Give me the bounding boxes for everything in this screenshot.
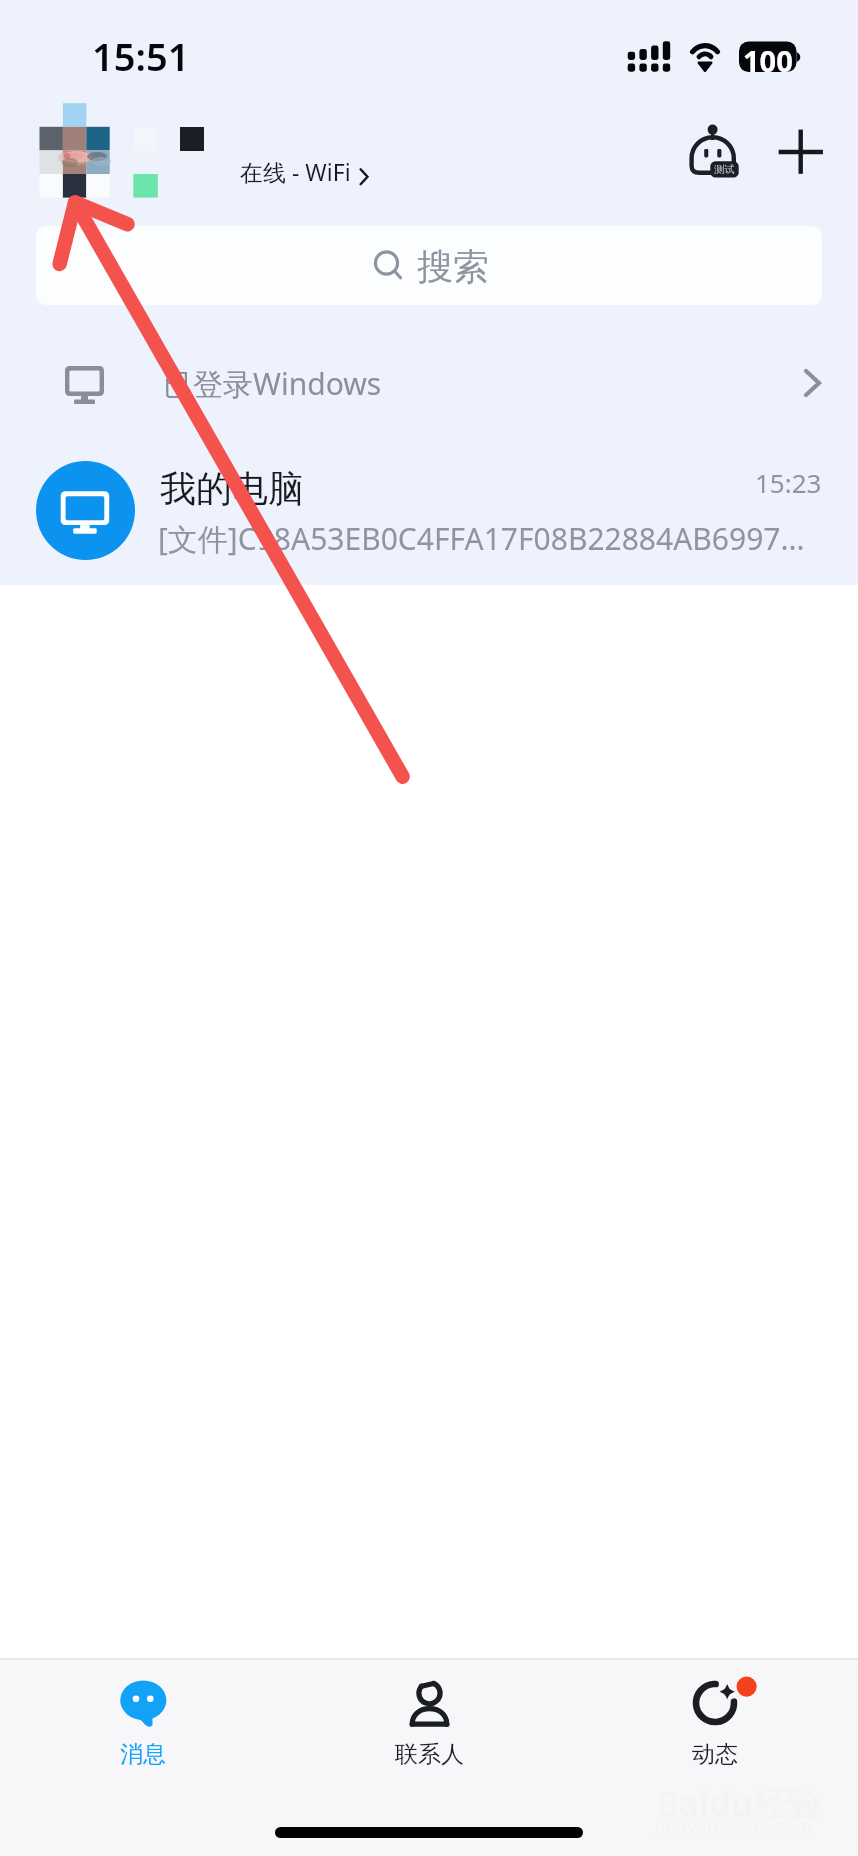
button[interactable]: AI assistant: [688, 123, 740, 175]
button[interactable]: Add: [774, 123, 826, 175]
button[interactable]: 动态: [572, 1660, 858, 1769]
staticText: 测试: [714, 163, 735, 176]
staticText: 在线 - WiFi: [240, 156, 351, 187]
staticText: 搜索: [417, 244, 489, 289]
button[interactable]: 联系人: [286, 1660, 572, 1769]
button[interactable]: 已登录Windows: [0, 340, 858, 430]
staticText: 联系人: [395, 1740, 464, 1769]
staticText: 15:23: [755, 465, 822, 500]
button[interactable]: 在线 - WiFi: [230, 150, 380, 190]
staticText: 动态: [692, 1740, 738, 1769]
staticText: 已登录Windows: [163, 363, 382, 404]
staticText: 15:51: [92, 30, 190, 82]
staticText: 消息: [120, 1740, 166, 1769]
staticText: [文件]C98A53EB0C4FFA17F08B22884AB6997...: [158, 518, 818, 559]
staticText: 我的电脑: [160, 466, 304, 511]
button[interactable]: 我的电脑: [0, 448, 858, 576]
staticText: 100: [743, 41, 793, 72]
button[interactable]: 搜索: [36, 226, 822, 305]
button[interactable]: 消息: [0, 1660, 286, 1769]
